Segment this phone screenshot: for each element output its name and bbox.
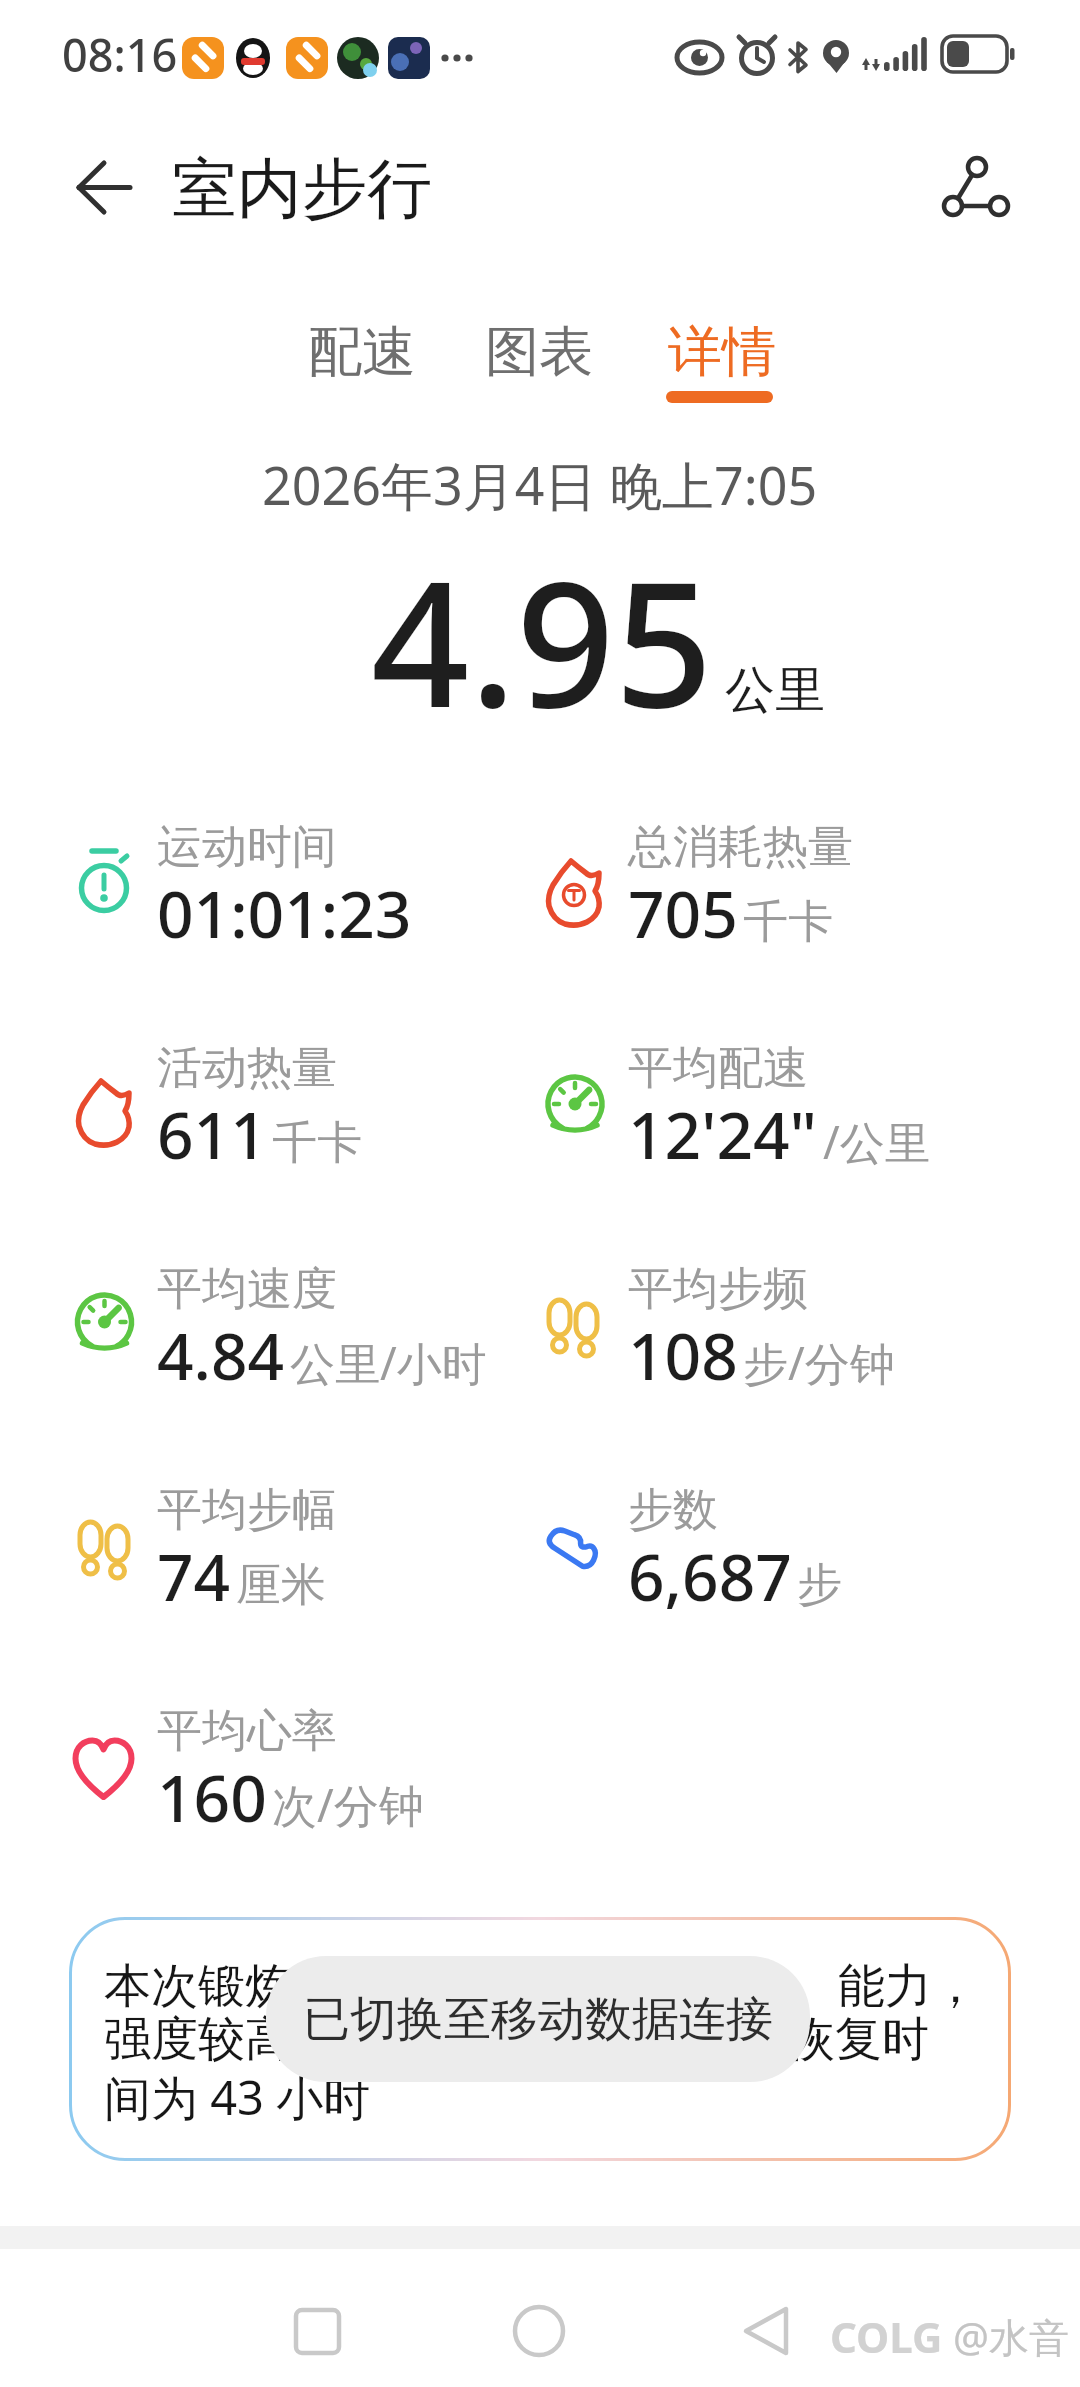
staticText: 74 — [157, 1533, 231, 1620]
button[interactable] — [256, 2280, 376, 2387]
staticText: 总消耗热量 — [628, 819, 853, 876]
staticText: 间为 43 小时 — [104, 2065, 371, 2129]
staticText: 08:16 — [62, 24, 178, 85]
staticText: 图表 — [485, 318, 593, 386]
staticText: 千卡 — [272, 1115, 362, 1172]
staticText: 平均心率 — [157, 1703, 337, 1760]
staticText: 平均配速 — [628, 1040, 808, 1097]
button[interactable] — [706, 2280, 826, 2387]
button[interactable] — [479, 2280, 599, 2387]
staticText: 步/分钟 — [743, 1332, 895, 1393]
staticText: 01:01:23 — [157, 870, 412, 957]
staticText: 次/分钟 — [272, 1774, 424, 1835]
staticText: 160 — [157, 1754, 267, 1841]
staticText: 平均速度 — [157, 1261, 337, 1318]
staticText: 活动热量 — [157, 1040, 337, 1097]
staticText: @水音 — [953, 2309, 1069, 2364]
staticText: 本次锻炼 — [104, 1957, 292, 2016]
staticText: 厘米 — [236, 1557, 326, 1614]
staticText: 能力， — [838, 1957, 979, 2016]
staticText: COLG — [830, 2308, 943, 2365]
button[interactable]: 图表 — [465, 300, 613, 404]
staticText: 108 — [628, 1312, 738, 1399]
staticText: 详情 — [668, 318, 776, 386]
staticText: 配速 — [308, 318, 416, 386]
staticText: 公里 — [725, 659, 825, 722]
staticText: 12'24" — [628, 1091, 818, 1178]
staticText: 4.84 — [157, 1312, 285, 1399]
staticText: 6,687 — [628, 1533, 792, 1620]
staticText: 平均步频 — [628, 1261, 808, 1318]
staticText: 611 — [157, 1091, 267, 1178]
staticText: 千卡 — [743, 894, 833, 951]
staticText: 强度较高 — [104, 2010, 292, 2069]
button[interactable]: 详情 — [648, 300, 796, 404]
button[interactable] — [56, 144, 144, 232]
staticText: 已切换至移动数据连接 — [303, 1990, 773, 2049]
staticText: 4.95 — [371, 523, 713, 757]
button[interactable] — [925, 140, 1021, 236]
staticText: 2026年3月4日 晚上7:05 — [262, 449, 818, 520]
staticText: 705 — [628, 870, 738, 957]
staticText: /公里 — [823, 1111, 930, 1172]
staticText: 运动时间 — [157, 819, 337, 876]
staticText: 室内步行 — [172, 148, 432, 230]
staticText: 恢复时 — [788, 2010, 929, 2069]
staticText: 平均步幅 — [157, 1482, 337, 1539]
button[interactable]: 配速 — [288, 300, 436, 404]
staticText: 步数 — [628, 1482, 718, 1539]
staticText: 步 — [797, 1557, 842, 1614]
staticText: 公里/小时 — [290, 1332, 487, 1393]
